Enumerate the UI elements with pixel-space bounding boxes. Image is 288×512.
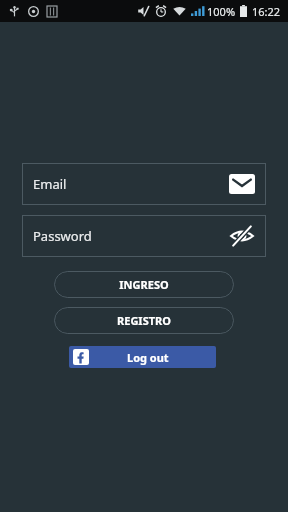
staticText: Password bbox=[33, 227, 92, 245]
staticText: Log out bbox=[127, 350, 169, 365]
staticText: Email bbox=[33, 175, 67, 193]
staticText: 16:22 bbox=[252, 4, 281, 19]
button[interactable]: Log out bbox=[69, 346, 216, 368]
button[interactable]: Password bbox=[22, 215, 266, 257]
other: Email bbox=[229, 174, 255, 194]
button[interactable]: INGRESO bbox=[54, 271, 234, 298]
button[interactable]: REGISTRO bbox=[54, 307, 234, 334]
staticText: INGRESO bbox=[119, 277, 169, 292]
button[interactable]: Email bbox=[22, 163, 266, 205]
staticText: 100% bbox=[207, 4, 236, 19]
staticText: REGISTRO bbox=[117, 313, 171, 328]
other: Toggle password visibility bbox=[229, 226, 255, 246]
